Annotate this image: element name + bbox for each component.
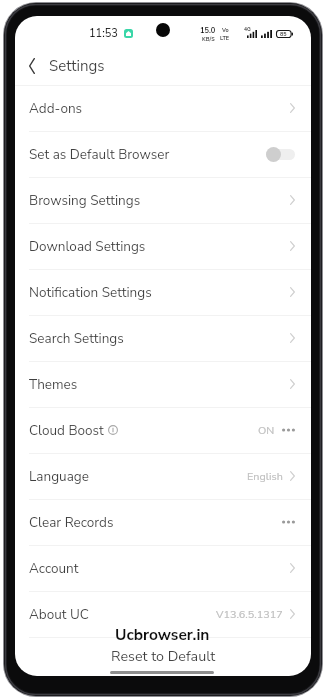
button[interactable]: Download Settings [15,224,311,270]
staticText: 4G [244,26,251,33]
button[interactable]: Back [15,49,49,83]
button[interactable]: Cloud Boost [15,408,311,454]
button[interactable]: Notification Settings [15,270,311,316]
button[interactable]: Themes [15,362,311,408]
staticText: Download Settings [29,237,146,255]
button[interactable]: Search Settings [15,316,311,362]
staticText: V13.6.5.1317 [216,607,283,622]
staticText: Vo [222,26,229,34]
button[interactable]: Reset to Default [15,638,311,676]
button[interactable]: About UC [15,592,311,638]
staticText: Cloud Boost [29,421,104,439]
staticText: KB/S [202,35,215,43]
staticText: 85 [280,30,287,38]
staticText: English [247,469,283,484]
staticText: Notification Settings [29,283,152,301]
staticText: Reset to Default [111,647,216,667]
staticText: ON [258,423,275,438]
staticText: LTE [220,34,230,42]
staticText: Settings [49,56,105,76]
staticText: Themes [29,375,78,393]
staticText: 11:53 [89,26,118,41]
button[interactable]: Account [15,546,311,592]
staticText: Search Settings [29,329,124,347]
button[interactable]: Clear Records [15,500,311,546]
button[interactable]: Set as Default Browser [15,132,311,178]
staticText: Browsing Settings [29,191,141,209]
staticText: Ucbrowser.in [115,624,210,645]
staticText: Account [29,559,79,577]
staticText: Set as Default Browser [29,145,170,163]
button[interactable]: Browsing Settings [15,178,311,224]
staticText: 15.0 [200,25,216,35]
staticText: Language [29,467,89,485]
staticText: About UC [29,605,89,623]
button[interactable]: Add-ons [15,86,311,132]
button[interactable]: Language [15,454,311,500]
staticText: Add-ons [29,99,83,117]
staticText: Clear Records [29,513,114,531]
